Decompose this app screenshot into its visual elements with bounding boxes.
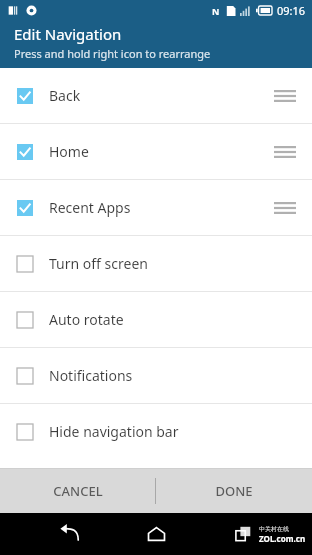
button[interactable]: Recent Apps: [229, 519, 259, 549]
button[interactable]: Reorder Back: [272, 83, 298, 109]
staticText: Press and hold right icon to rearrange: [14, 46, 211, 61]
button[interactable]: Recent Apps: [0, 180, 312, 235]
button[interactable]: Reorder Recent Apps: [272, 195, 298, 221]
staticText: Back: [49, 86, 81, 105]
button[interactable]: Reorder Home: [272, 139, 298, 165]
staticText: N: [212, 5, 220, 17]
staticText: Home: [49, 142, 89, 161]
staticText: ZOL.com.cn: [259, 533, 306, 544]
staticText: DONE: [215, 482, 253, 500]
button[interactable]: DONE: [156, 469, 312, 513]
staticText: CANCEL: [53, 482, 103, 500]
staticText: Hide navigation bar: [49, 422, 179, 441]
staticText: Notifications: [49, 366, 133, 385]
button[interactable]: Turn off screen: [0, 236, 312, 291]
button[interactable]: Home: [0, 124, 312, 179]
button[interactable]: Back: [0, 68, 312, 123]
button[interactable]: Home: [139, 517, 173, 551]
button[interactable]: Notifications: [0, 348, 312, 403]
button[interactable]: Hide navigation bar: [0, 404, 312, 459]
button[interactable]: Back: [52, 517, 86, 551]
staticText: 09:16: [277, 3, 306, 18]
staticText: Recent Apps: [49, 198, 131, 217]
button[interactable]: Auto rotate: [0, 292, 312, 347]
button[interactable]: CANCEL: [0, 469, 155, 513]
staticText: Turn off screen: [49, 254, 148, 273]
staticText: Auto rotate: [49, 310, 124, 329]
staticText: 中关村在线: [259, 525, 289, 533]
staticText: Edit Navigation: [14, 24, 122, 44]
